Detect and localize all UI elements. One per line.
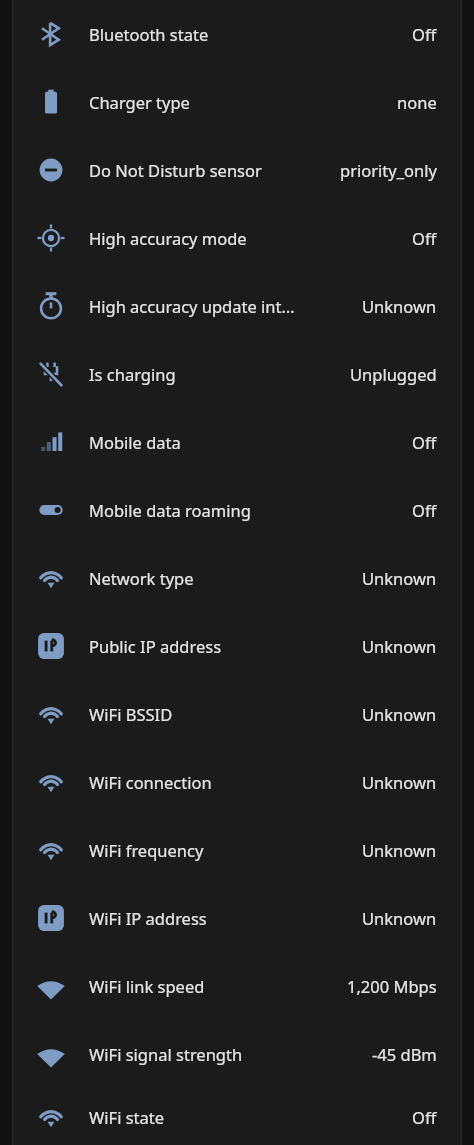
staticText: WiFi IP address <box>89 907 354 929</box>
button[interactable]: Do Not Disturb sensor <box>12 136 461 204</box>
staticText: WiFi connection <box>89 771 354 793</box>
staticText: High accuracy mode <box>89 227 404 249</box>
button[interactable]: WiFi link speed <box>12 952 461 1020</box>
staticText: none <box>397 91 437 113</box>
button[interactable]: Charger type <box>12 68 461 136</box>
button[interactable]: WiFi signal strength <box>12 1020 461 1088</box>
staticText: 1,200 Mbps <box>347 975 437 997</box>
staticText: Do Not Disturb sensor <box>89 159 332 181</box>
staticText: Is charging <box>89 363 342 385</box>
staticText: Off <box>412 227 437 249</box>
staticText: WiFi state <box>89 1106 404 1128</box>
staticText: Unknown <box>362 703 437 725</box>
button[interactable]: WiFi IP address <box>12 884 461 952</box>
staticText: Unknown <box>362 839 437 861</box>
staticText: Off <box>412 431 437 453</box>
staticText: Unknown <box>362 635 437 657</box>
button[interactable]: High accuracy update int… <box>12 272 461 340</box>
staticText: Off <box>412 499 437 521</box>
staticText: Network type <box>89 567 354 589</box>
button[interactable]: Network type <box>12 544 461 612</box>
staticText: Mobile data <box>89 431 404 453</box>
button[interactable]: Mobile data roaming <box>12 476 461 544</box>
staticText: Off <box>412 1106 437 1128</box>
button[interactable]: High accuracy mode <box>12 204 461 272</box>
button[interactable]: WiFi state <box>12 1088 461 1145</box>
staticText: Unknown <box>362 771 437 793</box>
staticText: Unknown <box>362 295 437 317</box>
staticText: WiFi frequency <box>89 839 354 861</box>
button[interactable]: WiFi frequency <box>12 816 461 884</box>
button[interactable]: WiFi connection <box>12 748 461 816</box>
staticText: High accuracy update int… <box>89 295 354 317</box>
staticText: priority_only <box>340 159 437 181</box>
button[interactable]: Is charging <box>12 340 461 408</box>
staticText: -45 dBm <box>372 1043 437 1065</box>
staticText: Mobile data roaming <box>89 499 404 521</box>
staticText: Charger type <box>89 91 389 113</box>
staticText: Unknown <box>362 907 437 929</box>
staticText: Bluetooth state <box>89 23 404 45</box>
staticText: Off <box>412 23 437 45</box>
staticText: WiFi link speed <box>89 975 339 997</box>
staticText: WiFi signal strength <box>89 1043 364 1065</box>
staticText: Unknown <box>362 567 437 589</box>
staticText: Public IP address <box>89 635 354 657</box>
button[interactable]: Public IP address <box>12 612 461 680</box>
button[interactable]: Mobile data <box>12 408 461 476</box>
staticText: WiFi BSSID <box>89 703 354 725</box>
button[interactable]: Bluetooth state <box>12 0 461 68</box>
staticText: Unplugged <box>350 363 437 385</box>
button[interactable]: WiFi BSSID <box>12 680 461 748</box>
